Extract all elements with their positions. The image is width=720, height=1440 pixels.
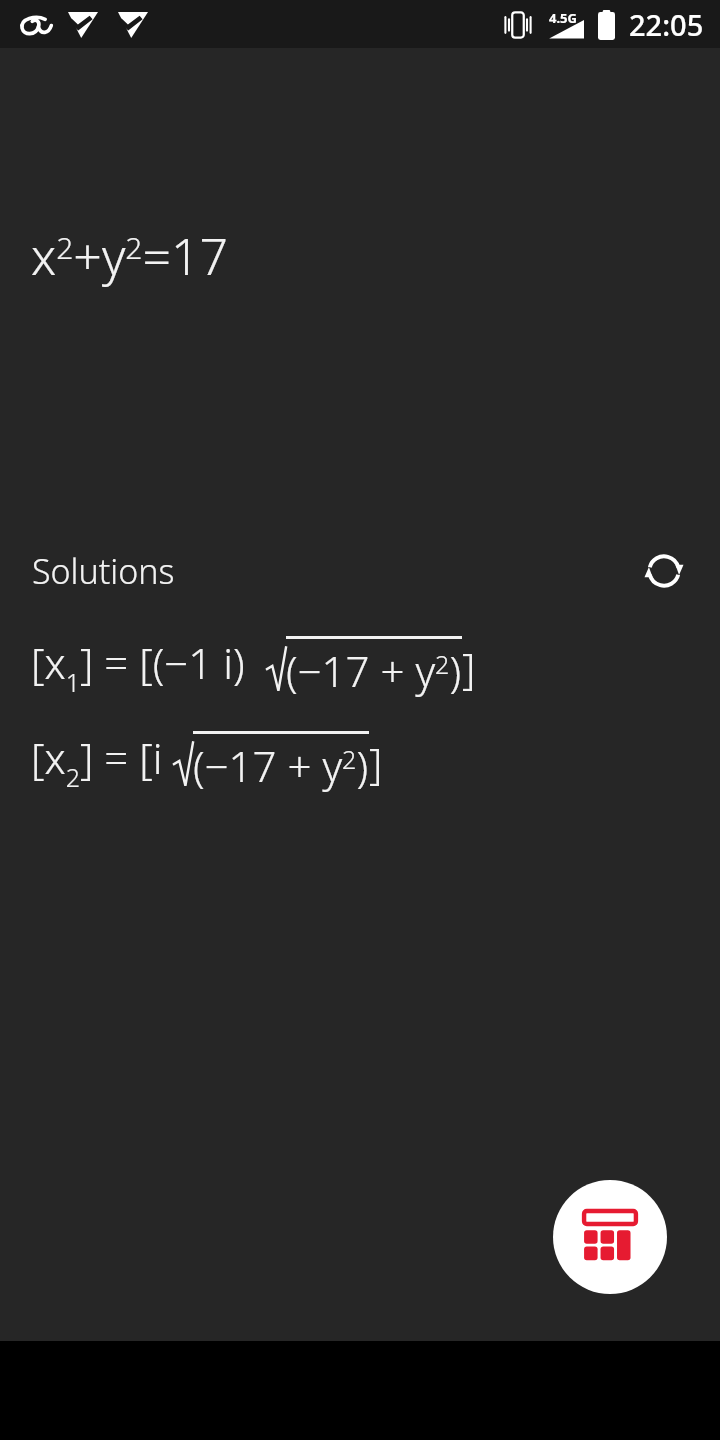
- staticText: x2+y2=17: [31, 222, 229, 290]
- button[interactable]: Refresh solutions: [633, 540, 695, 602]
- staticText: ]: [369, 734, 383, 791]
- staticText: 22:05: [629, 5, 704, 44]
- staticText: Solutions: [32, 548, 175, 594]
- staticText: [x2] = [i: [31, 729, 174, 795]
- staticText: ]: [462, 639, 476, 696]
- staticText: (−17 + y2): [286, 642, 462, 699]
- staticText: 4.5G: [549, 9, 577, 27]
- staticText: [x1] = [(−1 i): [31, 634, 267, 700]
- button[interactable]: Open calculator: [553, 1180, 667, 1294]
- staticText: (−17 + y2): [193, 737, 369, 794]
